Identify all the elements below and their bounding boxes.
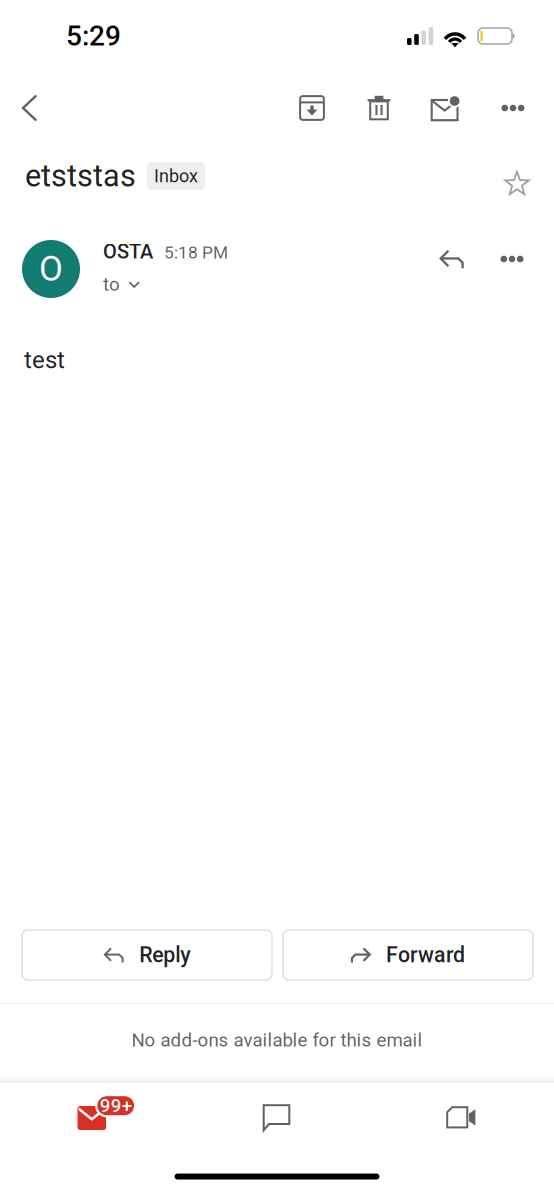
staticText: Inbox [154,165,198,187]
staticText: O [39,249,63,289]
button[interactable]: More options [490,245,534,273]
button[interactable]: Mail, 99+ unread [0,1091,184,1145]
staticText: to [103,273,120,295]
staticText: etststas [25,158,136,194]
button[interactable]: Mark as unread [419,81,473,135]
staticText: 5:29 [66,20,121,52]
button[interactable]: Forward [283,930,533,980]
button[interactable]: Reply [430,241,474,277]
button[interactable]: More options [486,81,540,135]
button[interactable]: Star [495,154,539,198]
staticText: Forward [386,942,465,967]
button[interactable]: Delete [352,81,406,135]
staticText: 5:18 PM [164,242,228,263]
staticText: test [24,346,65,374]
button[interactable]: Back [3,81,57,135]
button[interactable]: Archive [285,81,339,135]
button[interactable]: Meet [369,1091,554,1145]
button[interactable]: Reply [22,930,272,980]
staticText: Reply [139,942,190,967]
staticText: No add-ons available for this email [131,1029,422,1051]
staticText: 99+ [100,1095,132,1117]
button[interactable]: Chat [184,1091,369,1145]
staticText: OSTA [103,240,153,263]
